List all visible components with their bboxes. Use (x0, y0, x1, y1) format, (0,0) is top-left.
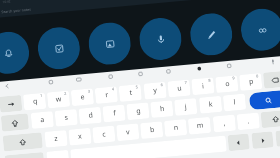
button[interactable]: b (140, 121, 163, 139)
button[interactable]: Handwriting (239, 7, 280, 52)
staticText: 6 (160, 82, 164, 87)
button[interactable]: k (199, 96, 222, 114)
staticText: f (113, 108, 116, 118)
button[interactable]: e (71, 88, 94, 106)
button[interactable]: Clipboard (45, 77, 56, 88)
button[interactable]: , (213, 115, 236, 132)
staticText: 7 (184, 80, 188, 85)
staticText: i (201, 81, 204, 91)
button[interactable]: . (237, 112, 260, 130)
button[interactable]: i (191, 77, 215, 95)
button[interactable]: Back (2, 81, 13, 91)
button[interactable]: z (44, 130, 68, 148)
button[interactable]: Shift (260, 110, 280, 128)
button[interactable]: Tab (0, 95, 22, 113)
staticText: 4 (112, 86, 115, 92)
button[interactable]: Add image (87, 21, 132, 66)
button[interactable]: y (143, 82, 167, 100)
staticText: o (224, 79, 230, 89)
button[interactable]: m (188, 117, 211, 135)
button[interactable]: Voice input (268, 56, 278, 67)
staticText: 1 (40, 93, 43, 98)
button[interactable]: f (102, 104, 126, 122)
staticText: k (208, 99, 213, 110)
button[interactable]: , (46, 150, 70, 158)
button[interactable]: Emoji (275, 129, 280, 147)
button[interactable]: q (23, 93, 46, 111)
staticText: d (88, 110, 94, 121)
button[interactable]: n (164, 119, 187, 137)
button[interactable]: Backspace (263, 71, 280, 89)
button[interactable]: d (78, 107, 102, 125)
button[interactable]: Emoji (194, 63, 205, 74)
staticText: m (196, 120, 204, 131)
staticText: x (77, 131, 82, 142)
staticText: 2 (64, 91, 67, 96)
button[interactable]: x (68, 128, 92, 146)
staticText: Search your notes (1, 7, 31, 14)
staticText: v (125, 127, 130, 137)
button[interactable]: Search your notes (0, 0, 280, 19)
staticText: 9 (232, 75, 235, 81)
staticText: u (177, 83, 182, 94)
button[interactable]: New list (36, 25, 82, 71)
staticText: 0 (256, 73, 259, 78)
button[interactable]: j (174, 98, 197, 116)
staticText: w (55, 94, 62, 105)
button[interactable]: o (215, 75, 238, 93)
staticText: l (233, 97, 236, 108)
staticText: b (149, 125, 155, 135)
staticText: a (40, 115, 45, 125)
button[interactable]: Move cursor left (227, 133, 250, 151)
staticText: q (32, 96, 38, 107)
button[interactable]: Reminder (0, 30, 31, 76)
staticText: j (184, 102, 187, 112)
button[interactable]: Stickers (135, 68, 146, 79)
staticText: y (153, 85, 158, 96)
staticText: t (129, 88, 133, 98)
button[interactable]: l (223, 94, 246, 111)
staticText: n (173, 123, 179, 133)
staticText: h (159, 104, 165, 114)
button[interactable]: Shift (3, 132, 43, 152)
button[interactable]: More options (224, 60, 235, 71)
button[interactable]: Drawing (188, 11, 234, 57)
staticText: p (248, 77, 254, 87)
staticText: r (105, 90, 109, 100)
button[interactable]: r (95, 86, 118, 104)
button[interactable]: Search (249, 90, 280, 110)
button[interactable]: h (150, 100, 173, 118)
staticText: 3 (88, 88, 91, 94)
staticText: e (80, 92, 85, 102)
button[interactable]: GIF (73, 74, 84, 85)
button[interactable]: s (54, 109, 78, 127)
button[interactable]: w (47, 90, 70, 108)
button[interactable]: u (167, 79, 191, 97)
button[interactable]: Voice note (138, 16, 183, 62)
button[interactable]: Settings (105, 71, 116, 82)
button[interactable]: ?123 (4, 152, 45, 158)
staticText: 10:42 (2, 0, 12, 4)
button[interactable]: v (116, 123, 139, 141)
button[interactable]: a (31, 111, 54, 129)
button[interactable]: Space (70, 135, 227, 158)
button[interactable]: Caps lock (1, 113, 29, 132)
staticText: , (223, 118, 226, 129)
staticText: c (101, 129, 106, 140)
button[interactable]: c (92, 125, 116, 143)
staticText: 8 (208, 77, 212, 83)
staticText: . (247, 116, 250, 126)
staticText: s (64, 113, 69, 123)
button[interactable]: t (118, 84, 142, 102)
button[interactable]: Move cursor right (251, 131, 274, 149)
staticText: g (135, 106, 141, 116)
button[interactable]: Translate (163, 66, 174, 77)
button[interactable]: g (126, 102, 150, 120)
button[interactable]: p (239, 73, 262, 91)
staticText: 5 (135, 84, 139, 89)
staticText: z (54, 134, 58, 144)
